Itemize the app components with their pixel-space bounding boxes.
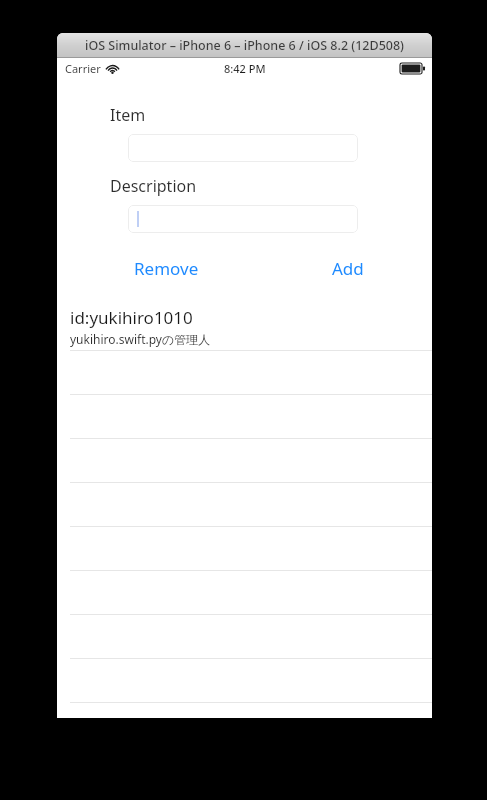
staticText: id:yukihiro1010 <box>70 306 193 329</box>
staticText: yukihiro.swift.pyの管理人 <box>70 331 211 347</box>
button[interactable] <box>128 134 358 162</box>
staticText: Item <box>110 104 146 126</box>
staticText: Carrier <box>65 61 101 76</box>
button[interactable] <box>128 205 358 233</box>
staticText: iOS Simulator – iPhone 6 – iPhone 6 / iO… <box>85 37 404 54</box>
staticText: Description <box>110 175 197 197</box>
staticText: 8:42 PM <box>224 61 266 76</box>
staticText: Remove <box>134 257 199 280</box>
button[interactable]: Add <box>326 253 370 284</box>
staticText: Add <box>332 257 364 280</box>
button[interactable]: id:yukihiro1010 <box>57 306 432 350</box>
button[interactable]: Remove <box>128 253 205 284</box>
